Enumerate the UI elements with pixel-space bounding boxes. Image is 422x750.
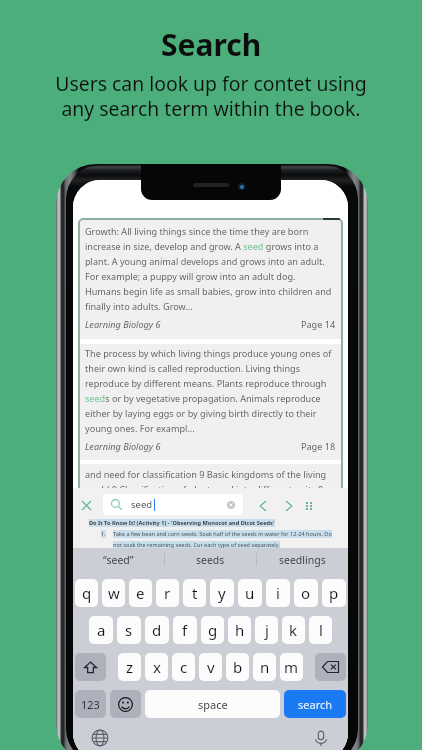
staticText: k — [289, 620, 298, 640]
staticText: The process by which living things produ… — [85, 347, 332, 435]
staticText: Learning Biology 6 — [85, 440, 161, 452]
staticText: Take a few bean and corn seeds. Soak hal… — [113, 530, 332, 538]
button[interactable]: c — [172, 653, 195, 681]
button[interactable]: Close search — [77, 496, 96, 515]
staticText: seed — [131, 498, 153, 511]
staticText: Search — [161, 24, 262, 65]
staticText: i — [276, 583, 280, 603]
button[interactable]: w — [102, 579, 125, 607]
button[interactable]: seedlings — [257, 548, 348, 571]
button[interactable]: Emoji — [110, 690, 141, 718]
button[interactable]: search — [284, 690, 346, 718]
staticText: a — [97, 620, 106, 640]
button[interactable]: h — [228, 616, 251, 644]
button[interactable]: Shift — [75, 653, 106, 681]
staticText: c — [180, 657, 188, 677]
staticText: s — [125, 620, 133, 640]
staticText: and need for classification 9 Basic king… — [85, 468, 336, 492]
button[interactable]: Previous result — [253, 496, 272, 515]
button[interactable]: Next result — [279, 496, 298, 515]
staticText: e — [136, 583, 145, 603]
button[interactable]: s — [117, 616, 141, 644]
staticText: Growth: All living things since the time… — [85, 225, 332, 313]
button[interactable]: d — [145, 616, 169, 644]
button[interactable]: l — [309, 616, 332, 644]
staticText: Learning Biology 6 — [85, 318, 161, 330]
button[interactable]: b — [226, 653, 249, 681]
staticText: u — [245, 583, 255, 603]
staticText: f — [182, 620, 188, 640]
button[interactable]: j — [255, 616, 278, 644]
staticText: p — [329, 583, 339, 603]
staticText: m — [284, 657, 299, 677]
staticText: n — [260, 657, 270, 677]
staticText: q — [82, 583, 92, 603]
staticText: “seed” — [103, 553, 134, 567]
button[interactable]: t — [183, 579, 206, 607]
staticText: search — [298, 697, 333, 712]
staticText: h — [235, 620, 245, 640]
button[interactable]: p — [322, 579, 346, 607]
button[interactable]: More options — [299, 496, 318, 515]
staticText: j — [265, 620, 269, 640]
button[interactable]: m — [280, 653, 303, 681]
staticText: space — [198, 697, 228, 712]
button[interactable]: k — [282, 616, 305, 644]
button[interactable]: Backspace — [315, 653, 346, 681]
staticText: Users can look up for contet using any s… — [55, 70, 367, 122]
staticText: 1. — [101, 530, 106, 538]
staticText: seeds — [196, 553, 225, 567]
button[interactable]: g — [201, 616, 224, 644]
button[interactable]: a — [89, 616, 113, 644]
staticText: g — [208, 620, 218, 640]
button[interactable]: q — [75, 579, 98, 607]
staticText: d — [152, 620, 162, 640]
button[interactable]: space — [145, 690, 280, 718]
button[interactable]: 123 — [75, 690, 106, 718]
button[interactable]: n — [253, 653, 276, 681]
staticText: Page 18 — [301, 440, 336, 452]
staticText: b — [233, 657, 243, 677]
button[interactable]: u — [238, 579, 262, 607]
staticText: seedlings — [279, 553, 326, 567]
button[interactable]: i — [266, 579, 290, 607]
staticText: t — [192, 583, 198, 603]
staticText: not soak the remaining seeds. Cut each t… — [113, 541, 280, 549]
button[interactable]: seed — [103, 494, 243, 515]
button[interactable]: z — [118, 653, 141, 681]
button[interactable]: e — [129, 579, 152, 607]
staticText: z — [126, 657, 134, 677]
button[interactable]: seeds — [165, 548, 256, 571]
button[interactable]: y — [210, 579, 234, 607]
staticText: Do It To Know It! (Activity 1) - 'Observ… — [89, 519, 275, 527]
staticText: x — [153, 657, 161, 677]
button[interactable]: x — [145, 653, 168, 681]
staticText: y — [218, 583, 226, 603]
button[interactable]: r — [156, 579, 179, 607]
staticText: w — [108, 583, 120, 603]
button[interactable]: Voice input — [312, 729, 330, 747]
staticText: v — [207, 657, 215, 677]
button[interactable]: v — [199, 653, 222, 681]
staticText: l — [319, 620, 323, 640]
button[interactable]: f — [173, 616, 197, 644]
staticText: r — [164, 583, 171, 603]
staticText: o — [301, 583, 311, 603]
staticText: Page 14 — [301, 318, 336, 330]
button[interactable]: Change keyboard — [91, 729, 109, 747]
button[interactable]: o — [294, 579, 318, 607]
staticText: 123 — [81, 697, 100, 712]
button[interactable]: “seed” — [73, 548, 164, 571]
